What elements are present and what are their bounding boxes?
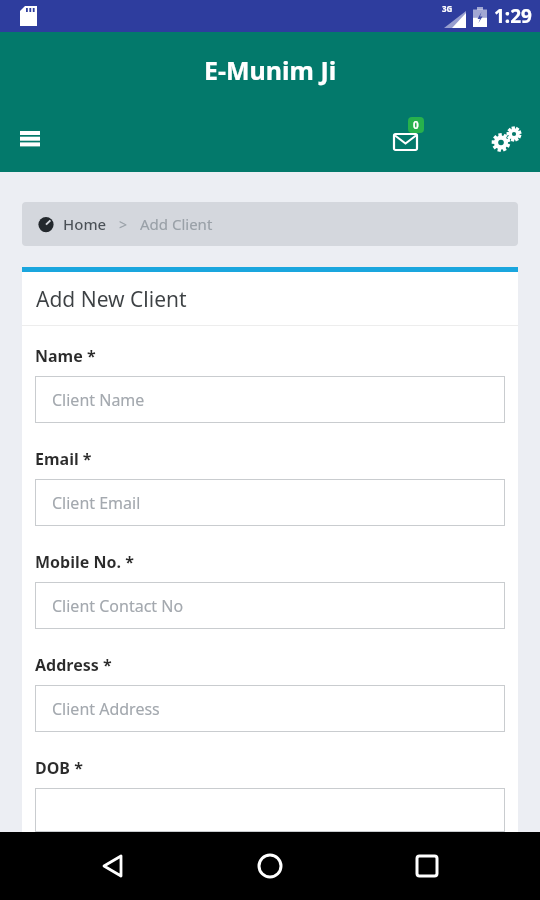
button[interactable]: Client Name	[35, 376, 505, 423]
button[interactable]: 0	[384, 112, 430, 158]
staticText: 0	[413, 118, 419, 132]
staticText: 1:29	[494, 3, 532, 29]
button[interactable]: Client Email	[35, 479, 505, 526]
staticText: >	[119, 215, 128, 234]
button[interactable]	[12, 121, 48, 157]
staticText: Email *	[35, 448, 92, 470]
button[interactable]: Home	[22, 202, 518, 246]
staticText: Mobile No. *	[35, 551, 134, 573]
staticText: Client Address	[52, 698, 160, 720]
staticText: E-Munim Ji	[204, 53, 337, 87]
button[interactable]	[250, 846, 290, 886]
staticText: DOB *	[35, 757, 83, 779]
staticText: Add Client	[140, 214, 213, 234]
staticText: Name *	[35, 345, 96, 367]
staticText: Home	[63, 214, 107, 234]
button[interactable]: Client Address	[35, 685, 505, 732]
button[interactable]: Client Contact No	[35, 582, 505, 629]
button[interactable]	[35, 788, 505, 832]
staticText: Client Name	[52, 389, 145, 411]
button[interactable]	[93, 846, 133, 886]
button[interactable]	[407, 846, 447, 886]
staticText: Address *	[35, 654, 112, 676]
staticText: Client Email	[52, 492, 141, 514]
button[interactable]	[487, 120, 525, 158]
staticText: Client Contact No	[52, 595, 184, 617]
staticText: Add New Client	[36, 285, 187, 314]
staticText: 3G	[442, 3, 453, 14]
